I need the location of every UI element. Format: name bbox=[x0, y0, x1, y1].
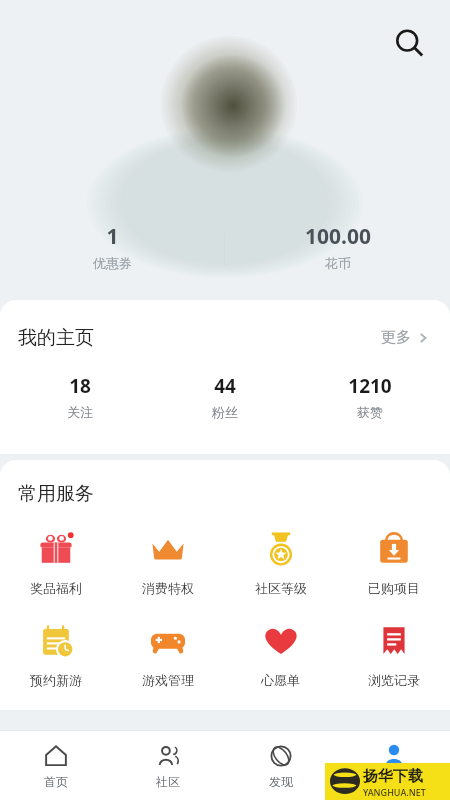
button[interactable]: 100.00 bbox=[225, 222, 450, 271]
staticText: 社区 bbox=[156, 774, 180, 789]
staticText: 预约新游 bbox=[30, 672, 82, 688]
button[interactable]: 1 bbox=[0, 222, 224, 271]
staticText: 发现 bbox=[269, 774, 293, 789]
button[interactable]: 已购项目 bbox=[337, 522, 450, 600]
staticText: 44 bbox=[214, 373, 236, 399]
staticText: YANGHUA.NET bbox=[363, 786, 426, 798]
staticText: 奖品福利 bbox=[30, 580, 82, 596]
button[interactable]: 发现 bbox=[224, 731, 337, 800]
button[interactable]: 心愿单 bbox=[224, 614, 337, 692]
staticText: 常用服务 bbox=[18, 482, 94, 506]
staticText: 我的主页 bbox=[18, 326, 94, 350]
button[interactable]: 44 bbox=[152, 373, 297, 420]
staticText: 我的 bbox=[382, 774, 406, 789]
staticText: 社区等级 bbox=[255, 580, 307, 596]
staticText: 粉丝 bbox=[212, 404, 238, 420]
staticText: 100.00 bbox=[305, 222, 371, 251]
button[interactable]: 游戏管理 bbox=[112, 614, 224, 692]
staticText: 已购项目 bbox=[368, 580, 420, 596]
staticText: 扬华下载 bbox=[363, 767, 423, 786]
staticText: 消费特权 bbox=[142, 580, 194, 596]
staticText: 花币 bbox=[325, 255, 351, 271]
staticText: 心愿单 bbox=[261, 672, 300, 688]
button[interactable]: 消费特权 bbox=[112, 522, 224, 600]
staticText: 游戏管理 bbox=[142, 672, 194, 688]
button[interactable]: 更多 bbox=[377, 324, 434, 351]
button[interactable]: 奖品福利 bbox=[0, 522, 112, 600]
staticText: 1 bbox=[106, 222, 119, 251]
button[interactable]: 预约新游 bbox=[0, 614, 112, 692]
button[interactable]: Search bbox=[388, 22, 430, 64]
staticText: 优惠券 bbox=[93, 255, 132, 271]
staticText: 18 bbox=[69, 373, 91, 399]
staticText: 浏览记录 bbox=[368, 672, 420, 688]
button[interactable]: 18 bbox=[8, 373, 152, 420]
button[interactable]: 我的 bbox=[337, 731, 450, 800]
staticText: 获赞 bbox=[357, 404, 383, 420]
button[interactable]: 首页 bbox=[0, 731, 112, 800]
button[interactable]: 1210 bbox=[297, 373, 442, 420]
staticText: 1210 bbox=[348, 373, 392, 399]
button[interactable]: 社区 bbox=[112, 731, 224, 800]
button[interactable]: 社区等级 bbox=[224, 522, 337, 600]
staticText: 关注 bbox=[67, 404, 93, 420]
staticText: 更多 bbox=[381, 328, 411, 347]
button[interactable]: 浏览记录 bbox=[337, 614, 450, 692]
staticText: 首页 bbox=[44, 774, 68, 789]
